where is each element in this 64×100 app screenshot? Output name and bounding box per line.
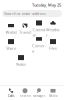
- staticText: Wallet: [5, 30, 16, 35]
- staticText: Messages: [33, 94, 45, 98]
- staticText: Notes: [16, 62, 26, 67]
- button[interactable]: Weather: [46, 23, 60, 35]
- button[interactable]: Media: [46, 86, 60, 99]
- staticText: Tuesday, May 25: [32, 2, 61, 8]
- button[interactable]: Recents: [18, 86, 32, 99]
- button[interactable]: Calendar: [32, 23, 46, 35]
- button[interactable]: Files: [46, 39, 60, 51]
- staticText: Calendar: [32, 27, 45, 37]
- button[interactable]: Notes: [14, 55, 28, 67]
- button[interactable]: Camera: [32, 39, 46, 51]
- staticText: Share: [6, 46, 16, 51]
- staticText: Weather: [46, 27, 60, 37]
- staticText: Transit: [19, 30, 31, 35]
- staticText: Files: [49, 46, 57, 51]
- button[interactable]: Transit: [18, 23, 32, 35]
- staticText: Calls: [8, 94, 14, 98]
- button[interactable]: Messages: [32, 86, 46, 99]
- staticText: Media: [49, 94, 57, 98]
- button[interactable]: Calls: [4, 86, 18, 99]
- button[interactable]: Wallet: [4, 23, 18, 35]
- staticText: Search or enter address: [4, 11, 46, 16]
- staticText: Camera: [32, 43, 46, 53]
- staticText: Recents: [19, 94, 30, 98]
- button[interactable]: Share: [4, 39, 18, 51]
